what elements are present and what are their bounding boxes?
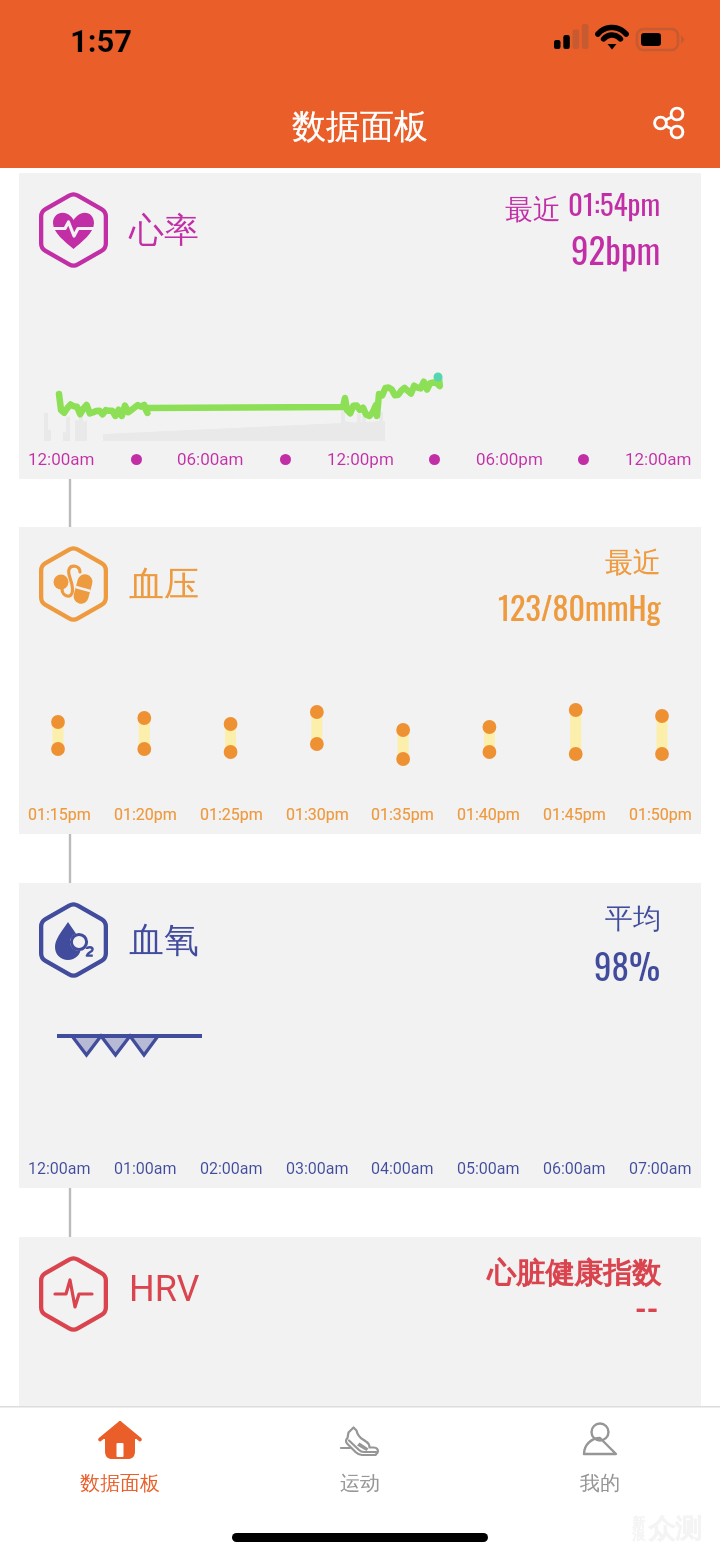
staticText: 心率 [129,208,199,252]
button[interactable]: 我的 [480,1406,720,1496]
staticText: 07:00am [629,1159,692,1178]
staticText: 01:45pm [543,805,606,824]
button[interactable]: 血氧 [19,883,701,1188]
staticText: 最近 [605,545,661,580]
staticText: 12:00am [625,449,692,469]
staticText: 98% [594,939,661,991]
button[interactable]: 血压 [19,527,701,834]
staticText: 数据面板 [80,1471,160,1496]
staticText: 92bpm [571,223,661,275]
staticText: 数据面板 [292,105,428,148]
staticText: 03:00am [286,1159,349,1178]
staticText: 01:25pm [200,805,263,824]
button[interactable]: Share [636,90,702,156]
staticText: 06:00pm [476,449,543,469]
staticText: 01:35pm [371,805,434,824]
staticText: 01:40pm [457,805,520,824]
staticText: 12:00pm [327,449,394,469]
staticText: 06:00am [177,449,244,469]
button[interactable]: HRV [19,1237,701,1406]
staticText: 12:00am [28,449,95,469]
staticText: 最近 [505,192,561,227]
staticText: -- [635,1291,659,1326]
staticText: 心脏健康指数 [487,1255,661,1292]
staticText: 血氧 [129,918,199,962]
button[interactable]: 心率 [19,173,701,479]
staticText: 123/80mmHg [498,583,661,630]
staticText: 05:00am [457,1159,520,1178]
button[interactable]: 运动 [240,1406,480,1496]
staticText: HRV [129,1268,200,1310]
staticText: 1:57 [70,23,133,59]
staticText: 04:00am [371,1159,434,1178]
staticText: 我的 [580,1471,620,1496]
staticText: 01:30pm [286,805,349,824]
staticText: 01:20pm [114,805,177,824]
button[interactable]: 数据面板 [0,1406,240,1496]
staticText: 01:00am [114,1159,177,1178]
staticText: 血压 [129,562,199,606]
staticText: 06:00am [543,1159,606,1178]
staticText: 01:50pm [629,805,692,824]
staticText: 平均 [605,901,661,936]
staticText: 新 浪 [632,1514,645,1544]
staticText: 运动 [340,1471,380,1496]
staticText: 02:00am [200,1159,263,1178]
staticText: 01:15pm [28,805,91,824]
staticText: 01:54pm [568,181,661,224]
staticText: 12:00am [28,1159,91,1178]
staticText: 众测 [648,1512,702,1546]
